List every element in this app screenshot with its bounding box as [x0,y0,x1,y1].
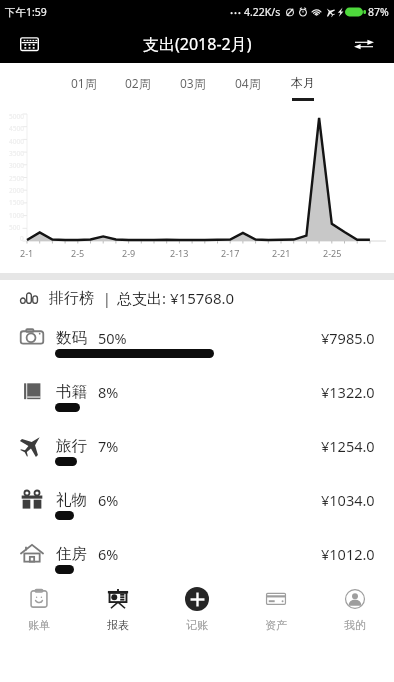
staticText: 排行榜 [49,289,94,308]
staticText: 87% [368,5,389,19]
staticText: 2-17 [221,247,240,259]
other: Add record [185,587,209,611]
staticText: 礼物 [56,490,87,510]
button[interactable]: 礼物 [0,478,394,532]
staticText: 04周 [235,75,261,91]
button[interactable]: 书籍 [0,370,394,424]
staticText: 资产 [265,618,287,632]
staticText: 2-5 [71,247,85,259]
staticText: 7% [98,436,119,456]
staticText: 下午1:59 [5,5,47,19]
button[interactable]: Add record [157,578,236,644]
staticText: 02周 [125,75,151,91]
staticText: 住房 [56,544,87,564]
staticText: 1000 [9,211,24,220]
button[interactable]: 账单 [0,578,78,644]
staticText: 数码 [56,328,87,348]
staticText: 2000 [9,186,24,195]
button[interactable]: Switch income expense [345,25,383,63]
staticText: 1500 [9,198,24,207]
staticText: 500 [9,223,21,232]
staticText: | [103,289,111,308]
staticText: 3000 [9,161,24,170]
button[interactable]: 报表 [78,578,157,644]
button[interactable]: 住房 [0,532,394,586]
staticText: 书籍 [56,382,87,402]
staticText: ¥1254.0 [321,436,375,456]
staticText: 6% [98,490,119,510]
staticText: 账单 [28,618,50,632]
staticText: ¥1322.0 [321,382,375,402]
button[interactable]: 本月 [275,63,330,106]
staticText: 50% [98,328,127,348]
staticText: 2-9 [122,247,136,259]
staticText: 03周 [180,75,206,91]
button[interactable]: 资产 [236,578,315,644]
staticText: 2-1 [20,247,34,259]
staticText: 本月 [291,75,315,90]
staticText: 2500 [9,174,24,183]
staticText: ¥1012.0 [321,544,375,564]
button[interactable]: 02周 [111,63,165,106]
staticText: 4000 [9,137,24,146]
button[interactable]: 04周 [220,63,275,106]
button[interactable]: 旅行 [0,424,394,478]
staticText: 支出(2018-2月) [143,33,252,55]
staticText: 6% [98,544,119,564]
staticText: 总支出: [117,288,167,308]
staticText: 报表 [107,618,129,632]
button[interactable]: 01周 [57,63,111,106]
staticText: 我的 [344,618,366,632]
staticText: 2-13 [170,247,189,259]
staticText: 记账 [186,618,208,632]
staticText: ¥1034.0 [321,490,375,510]
button[interactable]: 我的 [315,578,394,644]
staticText: 4500 [9,124,24,133]
staticText: 0 [20,234,24,243]
button[interactable]: Select month [10,25,48,63]
staticText: 2-25 [323,247,342,259]
staticText: 8% [98,382,119,402]
staticText: 01周 [71,75,97,91]
button[interactable]: 03周 [165,63,220,106]
staticText: 旅行 [56,436,87,456]
staticText: 2-21 [272,247,291,259]
staticText: 4.22K/s [244,5,281,19]
staticText: ¥15768.0 [170,288,235,308]
staticText: ¥7985.0 [321,328,375,348]
staticText: 3500 [9,149,24,158]
staticText: 5000 [9,112,24,121]
button[interactable]: 数码 [0,316,394,370]
